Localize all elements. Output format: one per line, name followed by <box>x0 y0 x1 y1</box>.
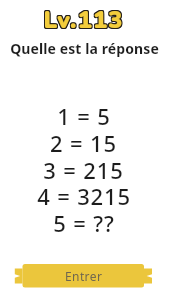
staticText: Entrer <box>65 268 103 284</box>
staticText: Lv.113 <box>44 3 125 35</box>
button[interactable]: Entrer <box>0 262 171 290</box>
staticText: Lv.113 <box>42 3 123 35</box>
staticText: Lv.113 <box>42 5 123 37</box>
staticText: Lv.113 <box>42 5 123 37</box>
staticText: 2 = 15 <box>50 128 117 158</box>
staticText: Lv.113 <box>44 4 125 36</box>
staticText: Lv.113 <box>42 4 123 36</box>
staticText: 5 = ?? <box>53 208 115 238</box>
staticText: Lv.113 <box>44 5 125 37</box>
staticText: Lv.113 <box>43 3 124 35</box>
staticText: Lv.113 <box>43 5 124 37</box>
staticText: Quelle est la réponse <box>10 39 159 58</box>
staticText: Lv.113 <box>42 3 123 35</box>
staticText: Lv.113 <box>44 3 125 35</box>
staticText: 1 = 5 <box>57 101 111 131</box>
staticText: 4 = 3215 <box>37 181 131 211</box>
staticText: Lv.113 <box>43 4 124 36</box>
staticText: Lv.113 <box>44 5 125 37</box>
staticText: 3 = 215 <box>43 155 124 185</box>
